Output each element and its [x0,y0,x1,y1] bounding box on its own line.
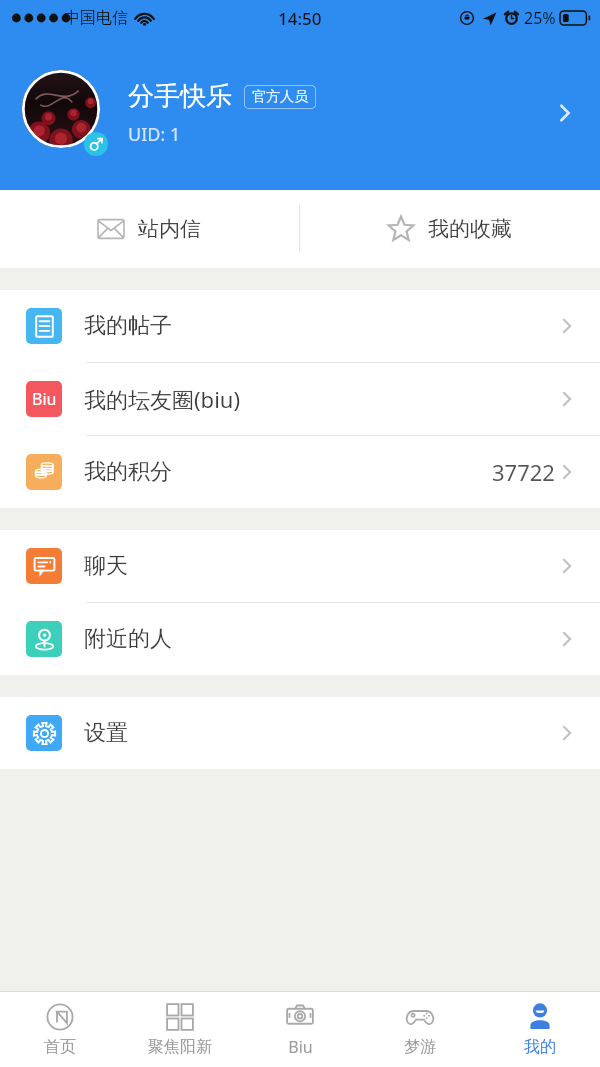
staticText: 附近的人 [84,625,172,653]
staticText: Biu [32,388,57,410]
staticText: 聊天 [84,552,128,580]
staticText: 我的收藏 [428,216,512,242]
staticText: 中国电信 [64,8,128,28]
staticText: 分手快乐 [128,80,232,113]
staticText: 聚焦阳新 [148,1037,212,1057]
button[interactable]: 首页 [0,992,120,1067]
button[interactable]: 我的 [480,992,600,1067]
other: Open profile [552,100,578,126]
button[interactable]: 设置 [0,697,600,769]
staticText: UID: 1 [128,122,181,147]
button[interactable]: 我的收藏 [300,190,600,268]
staticText: 25% [524,7,556,29]
staticText: 设置 [84,719,128,747]
staticText: 我的帖子 [84,312,172,340]
button[interactable]: 聚焦阳新 [120,992,240,1067]
button[interactable]: 聊天 [0,530,600,602]
button[interactable]: 我的积分 [0,436,600,508]
staticText: Biu [288,1036,313,1058]
staticText: 37722 [492,457,555,487]
button[interactable]: Biu [0,363,600,435]
staticText: 14:50 [278,7,322,30]
staticText: 站内信 [138,216,201,242]
staticText: 我的坛友圈(biu) [84,384,241,414]
button[interactable]: 我的帖子 [0,290,600,362]
staticText: 梦游 [404,1037,436,1057]
button[interactable]: 附近的人 [0,603,600,675]
button[interactable]: 梦游 [360,992,480,1067]
button[interactable]: 站内信 [0,190,299,268]
staticText: 首页 [44,1037,76,1057]
button[interactable]: Biu [240,992,360,1067]
staticText: 我的 [524,1037,556,1057]
button[interactable]: 分手快乐 [0,36,600,190]
staticText: 官方人员 [252,88,308,106]
staticText: 我的积分 [84,458,172,486]
